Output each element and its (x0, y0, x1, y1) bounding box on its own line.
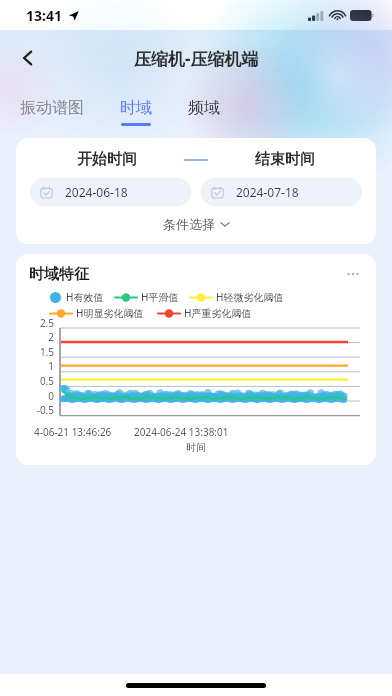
staticText: H有效值 (66, 290, 104, 304)
staticText: H严重劣化阈值 (184, 306, 252, 320)
staticText: 2024-06-24 13:38:01 (134, 425, 229, 439)
staticText: 0.5 (16, 374, 54, 388)
staticText: 压缩机-压缩机端 (134, 47, 259, 70)
staticText: 13:41 (26, 6, 62, 25)
staticText: 结束时间 (255, 150, 315, 169)
button[interactable]: 时域 (118, 96, 154, 128)
staticText: 条件选择 (163, 216, 215, 232)
staticText: H明显劣化阈值 (76, 306, 144, 320)
staticText: 2.5 (16, 316, 54, 330)
button[interactable]: 2024-07-18 (201, 178, 362, 206)
staticText: 开始时间 (77, 150, 137, 169)
staticText: 2024-07-18 (236, 184, 299, 200)
staticText: 振动谱图 (20, 98, 84, 118)
staticText: 4-06-21 13:46:26 (34, 425, 112, 439)
staticText: 时域特征 (29, 265, 89, 284)
staticText: H轻微劣化阈值 (216, 290, 284, 304)
staticText: 0 (16, 389, 54, 403)
staticText: H平滑值 (141, 290, 179, 304)
staticText: 时间 (186, 441, 206, 454)
staticText: -0.5 (16, 403, 54, 417)
button[interactable]: 2024-06-18 (30, 178, 191, 206)
button[interactable]: Back (8, 38, 48, 78)
button[interactable]: 条件选择 (30, 216, 362, 232)
staticText: 2 (16, 330, 54, 344)
button[interactable]: More options (343, 264, 363, 284)
staticText: 时域 (120, 98, 152, 118)
staticText: 2024-06-18 (65, 184, 128, 200)
button[interactable]: 振动谱图 (18, 96, 86, 128)
button[interactable]: 频域 (186, 96, 222, 128)
staticText: 1 (16, 359, 54, 373)
staticText: 频域 (188, 98, 220, 118)
staticText: 1.5 (16, 345, 54, 359)
